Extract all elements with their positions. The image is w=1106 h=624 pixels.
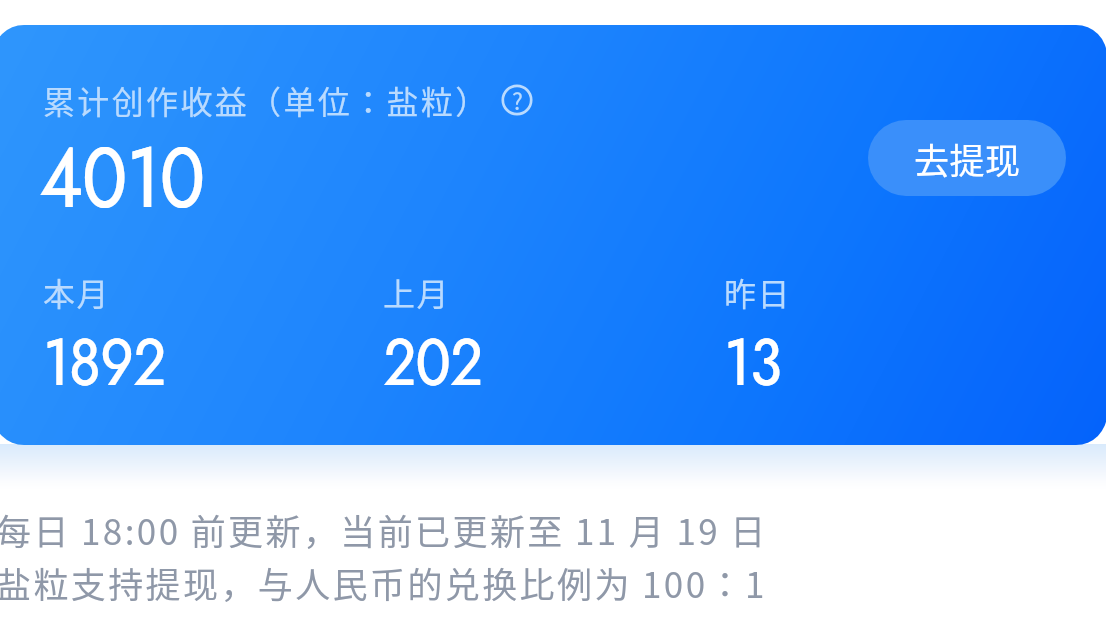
staticText: 盐粒支持提现，与人民币的兑换比例为 100：1: [0, 557, 767, 608]
staticText: 本月: [43, 269, 111, 315]
button[interactable]: 收益说明: [497, 80, 537, 120]
button[interactable]: 去提现: [868, 120, 1066, 196]
staticText: 去提现: [914, 133, 1021, 184]
staticText: 昨日: [724, 269, 792, 315]
staticText: 202: [383, 315, 482, 409]
staticText: 13: [724, 315, 781, 409]
staticText: 13: [725, 315, 782, 409]
staticText: 1892: [43, 315, 166, 409]
staticText: 1892: [44, 315, 167, 409]
staticText: ?: [512, 83, 523, 116]
staticText: 每日 18:00 前更新，当前已更新至 11 月 19 日: [0, 504, 768, 555]
staticText: 上月: [383, 269, 451, 315]
staticText: 4010: [40, 117, 205, 238]
staticText: 累计创作收益（单位：盐粒）: [43, 77, 490, 123]
staticText: 202: [384, 315, 483, 409]
staticText: 4010: [39, 117, 204, 238]
